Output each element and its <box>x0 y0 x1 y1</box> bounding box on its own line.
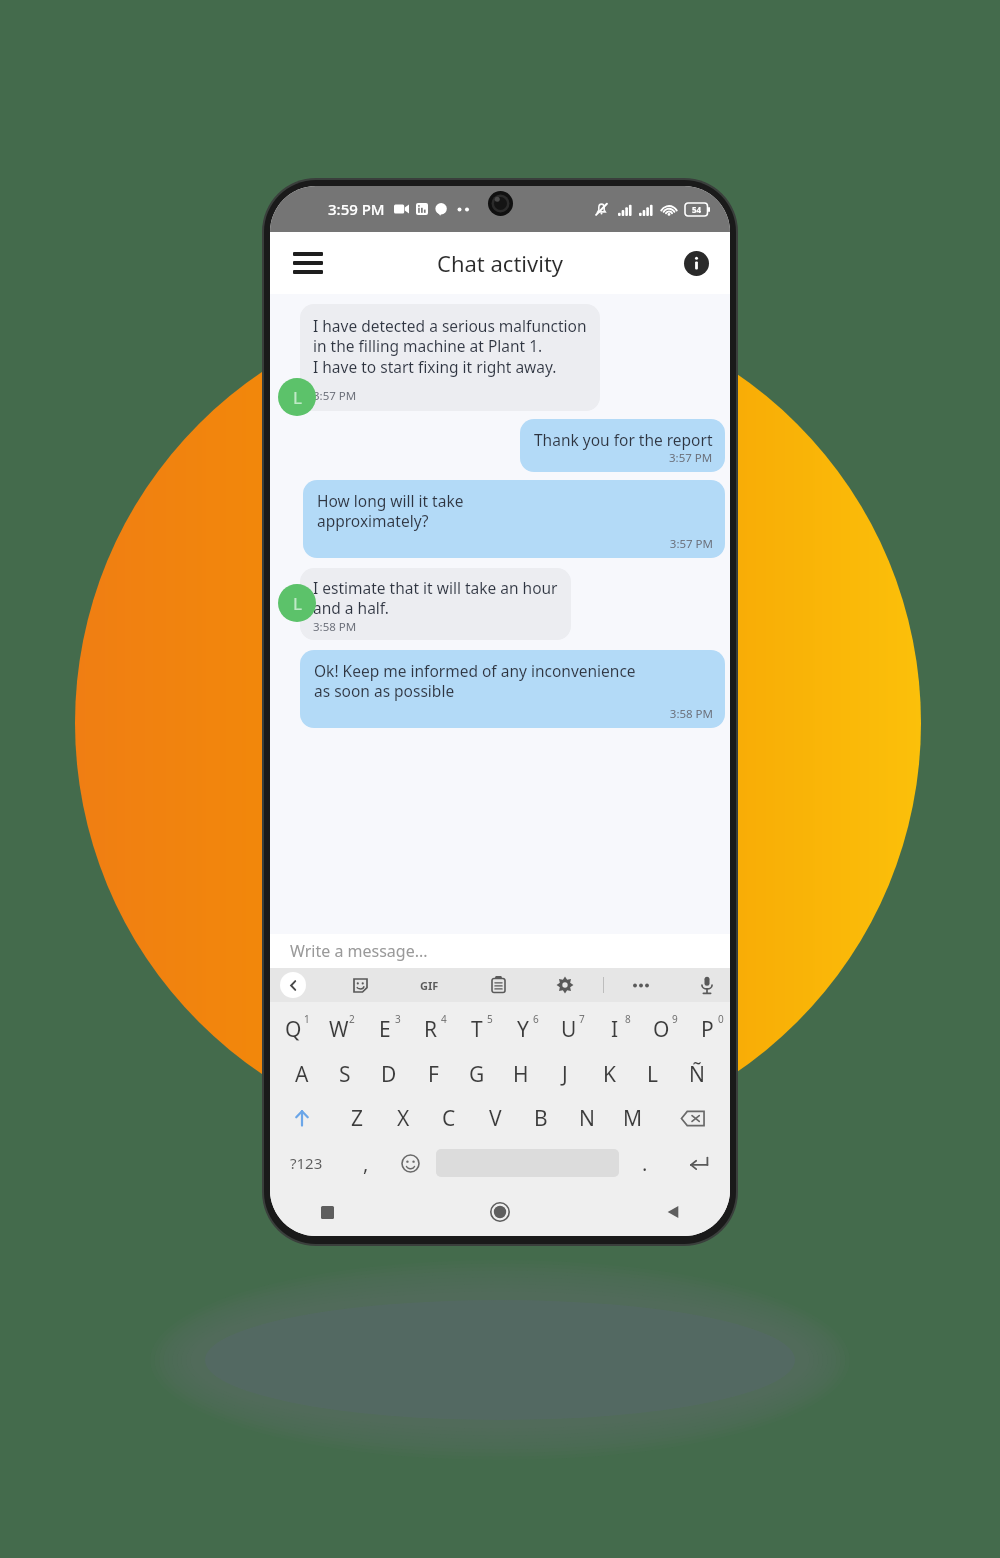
button[interactable]: Write a message... <box>270 934 730 968</box>
staticText: G <box>469 1060 485 1089</box>
button[interactable]: I estimate that it will take an hour and… <box>300 568 571 640</box>
button[interactable]: Ñ <box>675 1052 719 1096</box>
staticText: 54 <box>692 204 702 215</box>
staticText: 1 <box>304 1012 310 1026</box>
button[interactable]: Back <box>650 1189 696 1235</box>
staticText: O <box>653 1015 670 1044</box>
staticText: L <box>647 1060 659 1089</box>
button[interactable]: Y <box>500 1006 546 1052</box>
staticText: X <box>397 1104 410 1133</box>
staticText: 6 <box>533 1012 539 1026</box>
button[interactable]: F <box>411 1052 455 1096</box>
button[interactable]: Stickers <box>347 972 373 998</box>
staticText: Write a message... <box>290 940 428 962</box>
staticText: ?123 <box>290 1153 323 1173</box>
staticText: 9 <box>672 1012 678 1026</box>
staticText: F <box>428 1060 439 1089</box>
button[interactable]: I have detected a serious malfunction in… <box>300 304 600 411</box>
staticText: Chat activity <box>437 248 564 278</box>
button[interactable]: A <box>280 1052 323 1096</box>
button[interactable]: . <box>622 1140 667 1186</box>
staticText: GIF <box>420 978 439 993</box>
staticText: 7 <box>579 1012 585 1026</box>
button[interactable]: More options <box>629 973 653 997</box>
button[interactable]: Enter <box>667 1140 730 1186</box>
staticText: 5 <box>487 1012 493 1026</box>
staticText: 3:57 PM <box>313 388 357 404</box>
staticText: 3:57 PM <box>669 450 713 466</box>
button[interactable]: Open navigation menu <box>286 241 330 285</box>
button[interactable]: L <box>631 1052 675 1096</box>
button[interactable]: How long will it take approximately? <box>303 480 725 558</box>
staticText: V <box>489 1104 502 1133</box>
button[interactable]: K <box>587 1052 631 1096</box>
button[interactable]: X <box>380 1096 426 1140</box>
button[interactable]: Z <box>334 1096 380 1140</box>
staticText: T <box>471 1015 483 1044</box>
staticText: Q <box>285 1015 302 1044</box>
staticText: L <box>293 386 302 409</box>
button[interactable]: ?123 <box>270 1140 343 1186</box>
staticText: H <box>513 1060 529 1089</box>
staticText: R <box>424 1015 438 1044</box>
staticText: 4 <box>441 1012 447 1026</box>
button[interactable]: Home <box>477 1189 523 1235</box>
staticText: C <box>442 1104 456 1133</box>
button[interactable]: P <box>684 1006 730 1052</box>
button[interactable]: I <box>592 1006 638 1052</box>
button[interactable]: Emoji <box>388 1140 433 1186</box>
button[interactable]: B <box>518 1096 564 1140</box>
staticText: I estimate that it will take an hour and… <box>313 577 558 619</box>
button[interactable]: N <box>564 1096 610 1140</box>
button[interactable]: C <box>426 1096 472 1140</box>
button[interactable]: Q <box>270 1006 316 1052</box>
button[interactable]: D <box>367 1052 411 1096</box>
staticText: 3:58 PM <box>313 619 357 635</box>
staticText: A <box>295 1060 309 1089</box>
button[interactable]: T <box>454 1006 500 1052</box>
staticText: W <box>329 1015 349 1044</box>
button[interactable]: Settings <box>552 972 578 998</box>
button[interactable]: , <box>343 1140 388 1186</box>
button[interactable]: J <box>543 1052 587 1096</box>
button[interactable]: Clipboard <box>485 972 511 998</box>
button[interactable]: M <box>610 1096 656 1140</box>
button[interactable]: U <box>546 1006 592 1052</box>
staticText: J <box>562 1060 568 1089</box>
button[interactable]: O <box>638 1006 684 1052</box>
staticText: Ok! Keep me informed of any inconvenienc… <box>314 660 636 702</box>
staticText: Z <box>351 1104 364 1133</box>
staticText: I have detected a serious malfunction in… <box>313 315 587 378</box>
staticText: 3 <box>395 1012 401 1026</box>
button[interactable]: V <box>472 1096 518 1140</box>
button[interactable]: Back <box>280 972 306 998</box>
staticText: 3:58 PM <box>314 706 713 722</box>
button[interactable]: Ok! Keep me informed of any inconvenienc… <box>300 650 725 728</box>
staticText: B <box>534 1104 548 1133</box>
button[interactable]: Information <box>676 243 716 283</box>
button[interactable]: G <box>455 1052 499 1096</box>
button[interactable]: W <box>316 1006 362 1052</box>
staticText: 3:57 PM <box>317 536 713 552</box>
staticText: Thank you for the report <box>534 429 713 450</box>
staticText: 3:59 PM <box>328 199 385 219</box>
staticText: K <box>603 1060 616 1089</box>
staticText: M <box>623 1104 643 1133</box>
staticText: 8 <box>625 1012 631 1026</box>
button[interactable]: Shift <box>270 1096 334 1140</box>
button[interactable]: E <box>362 1006 408 1052</box>
staticText: 0 <box>718 1012 724 1026</box>
button[interactable]: H <box>499 1052 543 1096</box>
staticText: S <box>339 1060 351 1089</box>
button[interactable]: Backspace <box>656 1096 730 1140</box>
button[interactable]: R <box>408 1006 454 1052</box>
button[interactable]: Thank you for the report <box>520 419 725 472</box>
button[interactable]: Voice input <box>694 972 720 998</box>
staticText: D <box>381 1060 397 1089</box>
staticText: P <box>701 1015 714 1044</box>
button[interactable]: Recent apps <box>304 1189 350 1235</box>
staticText: 2 <box>349 1012 355 1026</box>
button[interactable]: S <box>323 1052 367 1096</box>
button[interactable]: GIF <box>414 974 444 996</box>
